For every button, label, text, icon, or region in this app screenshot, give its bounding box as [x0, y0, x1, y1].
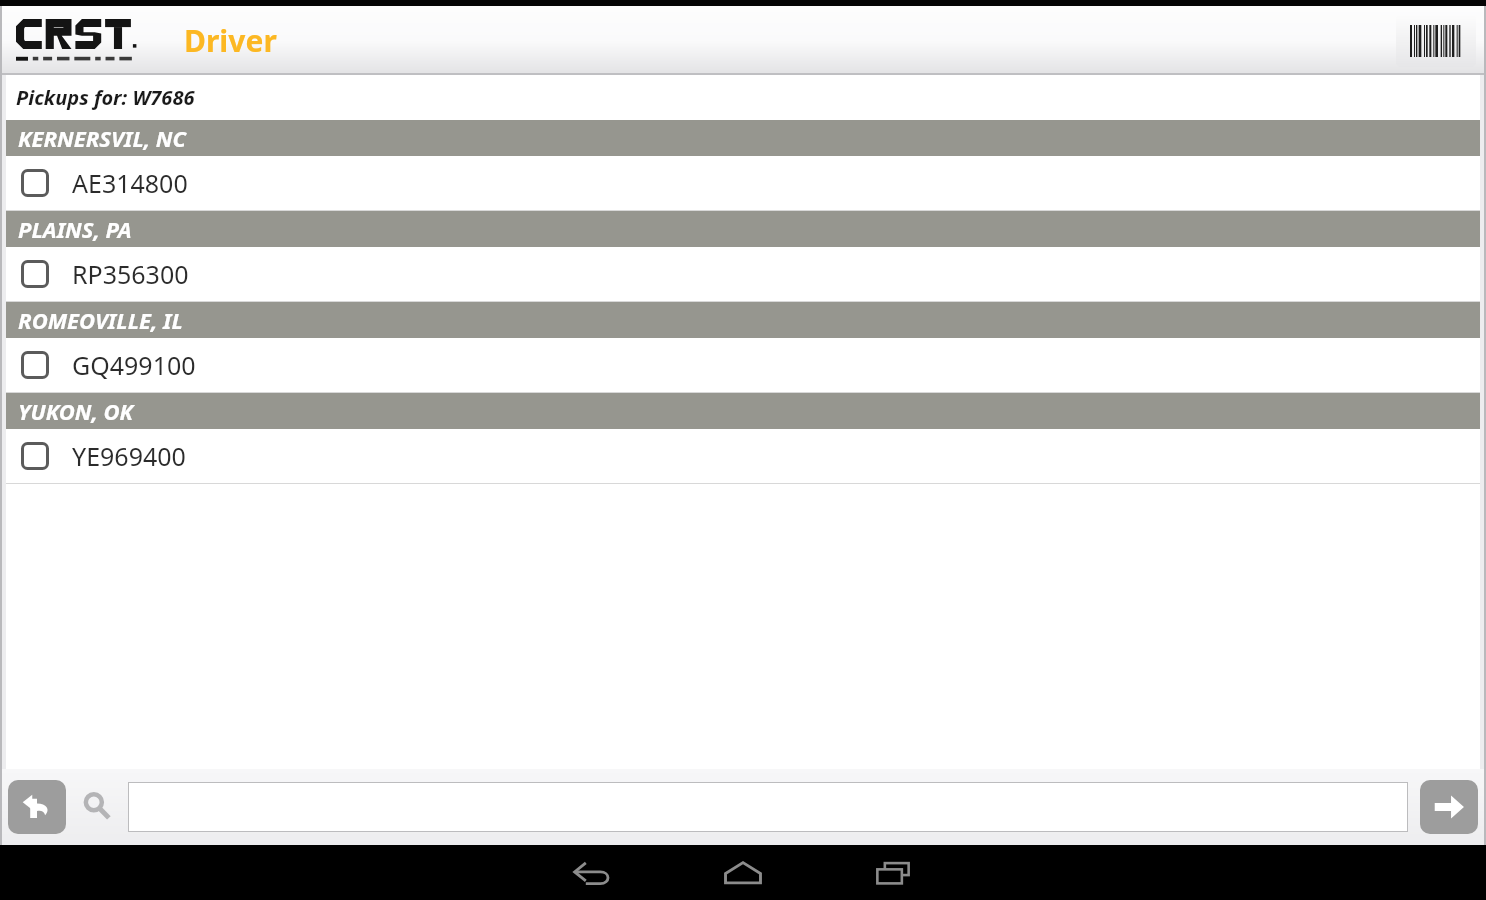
staticText: GQ499100: [72, 348, 196, 382]
button[interactable]: Next: [1420, 780, 1478, 834]
staticText: Pickups for: W7686: [16, 84, 195, 111]
staticText: Driver: [184, 20, 277, 61]
button[interactable]: Back: [8, 780, 66, 834]
button[interactable]: AE314800: [6, 156, 1480, 210]
button[interactable]: Scan barcode: [1396, 15, 1476, 67]
staticText: RP356300: [72, 257, 189, 291]
staticText: KERNERSVIL, NC: [18, 123, 186, 153]
staticText: AE314800: [72, 166, 188, 200]
staticText: ROMEOVILLE, IL: [18, 305, 183, 335]
button[interactable]: Back: [538, 845, 648, 900]
button[interactable]: GQ499100: [6, 338, 1480, 392]
button[interactable]: RP356300: [6, 247, 1480, 301]
staticText: YUKON, OK: [18, 396, 134, 426]
staticText: PLAINS, PA: [18, 214, 132, 244]
button[interactable]: Search: [78, 787, 118, 827]
button[interactable]: YE969400: [6, 429, 1480, 483]
button[interactable]: Recent apps: [838, 845, 948, 900]
button[interactable]: Home: [688, 845, 798, 900]
staticText: YE969400: [72, 439, 186, 473]
